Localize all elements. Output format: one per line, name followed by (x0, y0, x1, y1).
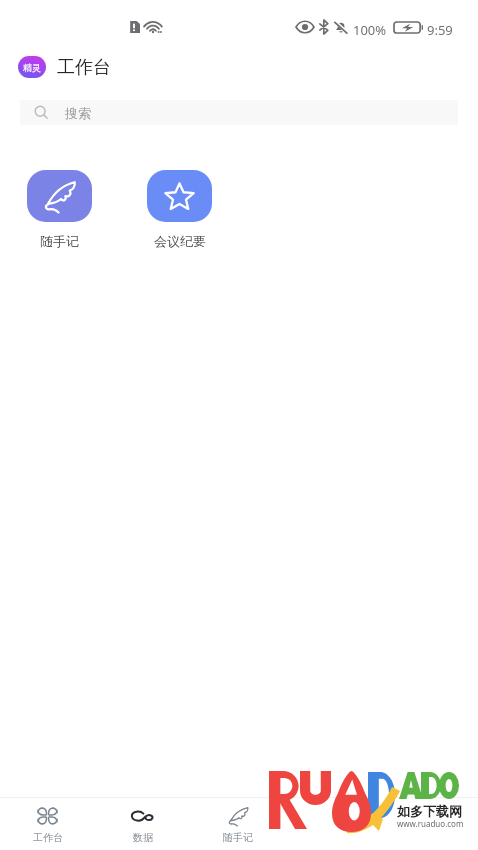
staticText: 如多下载网 (397, 803, 462, 819)
button[interactable]: 搜索 (20, 100, 458, 125)
staticText: 会议纪要 (154, 233, 206, 249)
button[interactable]: 随手记 (19, 170, 100, 249)
staticText: 工作台 (57, 56, 111, 79)
button[interactable]: 精灵 (18, 56, 46, 78)
staticText: 100% (353, 21, 387, 39)
button[interactable]: 数据 (95, 798, 190, 850)
staticText: 工作台 (33, 831, 63, 844)
button[interactable]: 随手记 (190, 798, 286, 850)
button[interactable]: 工作台 (0, 798, 95, 850)
staticText: www.ruaduo.com (397, 818, 464, 829)
staticText: 随手记 (40, 233, 79, 249)
staticText: 随手记 (223, 831, 253, 844)
staticText: 数据 (133, 831, 153, 844)
staticText: 搜索 (65, 105, 91, 121)
staticText: 9:59 (427, 21, 453, 39)
staticText: 精灵 (23, 62, 41, 73)
button[interactable]: 会议纪要 (139, 170, 220, 249)
